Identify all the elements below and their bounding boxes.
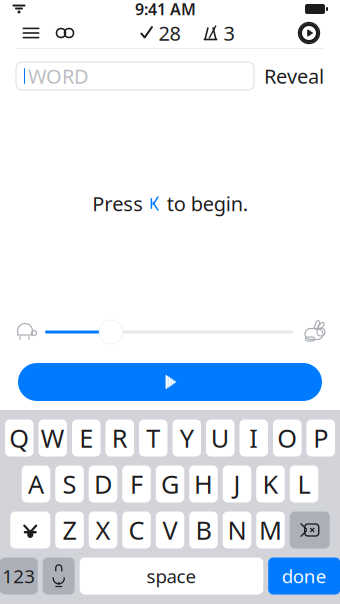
staticText: T bbox=[146, 421, 160, 455]
staticText: A bbox=[28, 467, 44, 501]
button[interactable]: 28 bbox=[139, 18, 180, 48]
button[interactable]: D bbox=[89, 465, 117, 502]
staticText: V bbox=[162, 513, 177, 547]
button[interactable]: E bbox=[72, 419, 100, 456]
button[interactable]: N bbox=[223, 511, 251, 548]
staticText: N bbox=[227, 513, 246, 547]
button[interactable]: M bbox=[256, 511, 285, 548]
button[interactable]: Dictate bbox=[43, 557, 75, 594]
button[interactable]: done bbox=[268, 557, 340, 594]
button[interactable]: W bbox=[38, 419, 67, 456]
staticText: S bbox=[62, 467, 76, 501]
button[interactable]: A bbox=[22, 465, 50, 502]
staticText: B bbox=[195, 513, 211, 547]
button[interactable]: X bbox=[89, 511, 117, 548]
staticText: WORD bbox=[28, 63, 89, 89]
button[interactable]: H bbox=[189, 465, 218, 502]
button[interactable]: space bbox=[80, 557, 263, 594]
button[interactable]: Reveal bbox=[264, 62, 324, 90]
button[interactable]: K bbox=[256, 465, 285, 502]
button[interactable]: V bbox=[156, 511, 184, 548]
button[interactable]: I bbox=[239, 419, 268, 456]
button[interactable]: 123 bbox=[0, 557, 38, 594]
staticText: G bbox=[161, 467, 179, 501]
staticText: 3 bbox=[223, 20, 234, 46]
staticText: 28 bbox=[158, 20, 180, 46]
staticText: X bbox=[95, 513, 110, 547]
button[interactable]: L bbox=[290, 465, 318, 502]
staticText: done bbox=[282, 564, 327, 588]
button[interactable]: Z bbox=[55, 511, 84, 548]
button[interactable]: Play bbox=[18, 363, 322, 401]
staticText: F bbox=[130, 467, 143, 501]
staticText: J bbox=[233, 467, 240, 501]
staticText: Press bbox=[92, 190, 143, 217]
staticText: M bbox=[259, 513, 282, 547]
button[interactable]: O bbox=[273, 419, 301, 456]
button[interactable]: Menu bbox=[14, 18, 48, 48]
staticText: C bbox=[128, 513, 144, 547]
button[interactable]: F bbox=[122, 465, 151, 502]
button[interactable]: J bbox=[223, 465, 251, 502]
staticText: P bbox=[313, 421, 328, 455]
staticText: O bbox=[277, 421, 297, 455]
button[interactable]: Playback settings bbox=[292, 18, 326, 48]
button[interactable]: B bbox=[189, 511, 218, 548]
staticText: U bbox=[211, 421, 230, 455]
staticText: Reveal bbox=[264, 63, 324, 89]
button[interactable]: T bbox=[139, 419, 167, 456]
staticText: space bbox=[146, 564, 196, 588]
button[interactable]: P bbox=[306, 419, 335, 456]
staticText: to begin. bbox=[167, 190, 248, 217]
staticText: Q bbox=[9, 421, 29, 455]
button[interactable]: Y bbox=[172, 419, 201, 456]
button[interactable]: Shift bbox=[10, 511, 50, 548]
button[interactable]: Review bbox=[48, 18, 82, 48]
button[interactable]: 3 bbox=[202, 18, 234, 48]
staticText: 123 bbox=[2, 564, 35, 588]
button[interactable]: R bbox=[105, 419, 134, 456]
button[interactable]: G bbox=[156, 465, 184, 502]
button[interactable]: C bbox=[122, 511, 151, 548]
staticText: Z bbox=[62, 513, 76, 547]
staticText: H bbox=[194, 467, 213, 501]
button[interactable]: Q bbox=[5, 419, 33, 456]
staticText: 9:41 AM bbox=[135, 0, 196, 20]
staticText: R bbox=[112, 421, 128, 455]
staticText: L bbox=[297, 467, 310, 501]
button[interactable]: Delete bbox=[290, 511, 330, 548]
staticText: I bbox=[249, 421, 258, 455]
staticText: K bbox=[262, 467, 278, 501]
staticText: W bbox=[41, 421, 65, 455]
button[interactable]: S bbox=[55, 465, 84, 502]
staticText: Y bbox=[180, 421, 194, 455]
staticText: E bbox=[79, 421, 93, 455]
button[interactable]: U bbox=[206, 419, 234, 456]
staticText: D bbox=[94, 467, 112, 501]
